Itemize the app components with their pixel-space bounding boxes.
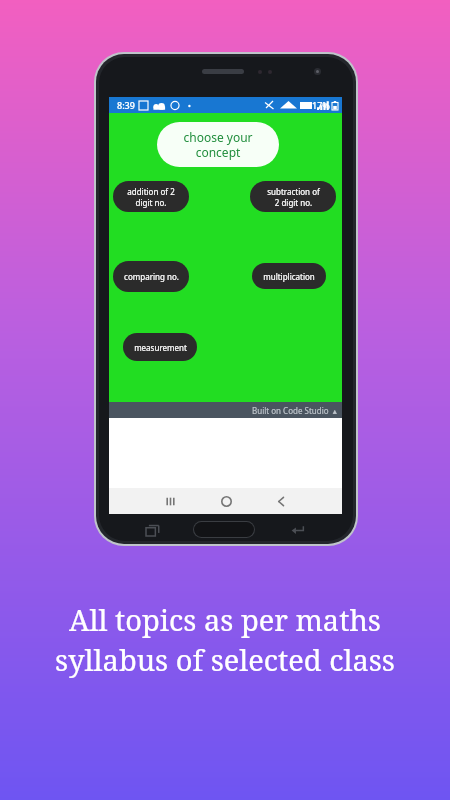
button[interactable]: addition of 2 digit no.	[113, 181, 189, 212]
button[interactable]: multiplication	[252, 263, 326, 289]
staticText: choose your concept	[183, 129, 253, 160]
staticText: measurement	[134, 342, 187, 353]
button[interactable]: choose your concept	[157, 122, 279, 167]
button[interactable]: Back	[264, 488, 298, 514]
button[interactable]: Home button	[193, 521, 255, 538]
staticText: 8:39	[117, 99, 135, 111]
staticText: addition of 2 digit no.	[127, 186, 175, 208]
staticText: Built on Code Studio ▴	[252, 405, 337, 416]
button[interactable]: measurement	[123, 333, 197, 361]
button[interactable]: Home	[209, 488, 243, 514]
button[interactable]: Recent apps	[153, 488, 187, 514]
button[interactable]: Recent apps	[142, 522, 162, 538]
staticText: 17%	[312, 99, 330, 111]
staticText: multiplication	[263, 271, 315, 282]
button[interactable]: subtraction of 2 digit no.	[250, 181, 336, 212]
button[interactable]: Back	[287, 522, 307, 538]
button[interactable]: comparing no.	[113, 261, 189, 292]
staticText: comparing no.	[124, 271, 179, 282]
button[interactable]: Built on Code Studio ▴	[109, 402, 342, 418]
staticText: All topics as per maths syllabus of sele…	[14, 600, 436, 680]
staticText: subtraction of 2 digit no.	[267, 186, 320, 208]
